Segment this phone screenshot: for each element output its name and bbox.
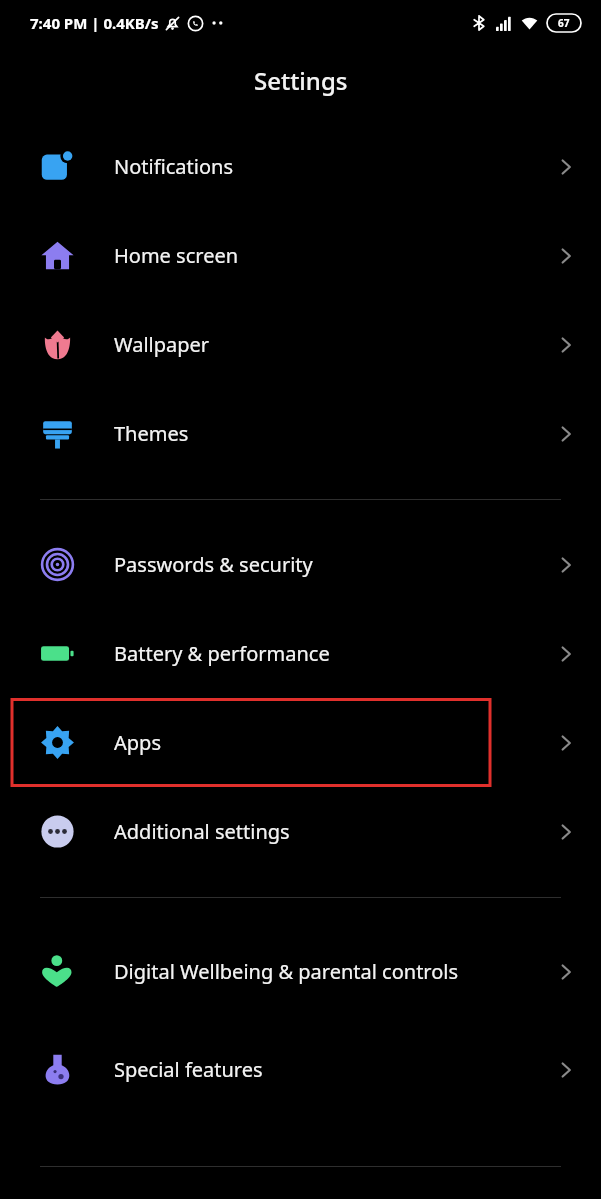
button[interactable]: Apps xyxy=(0,698,601,787)
staticText: 67 xyxy=(558,16,570,30)
staticText: Battery & performance xyxy=(114,640,473,667)
button[interactable]: Themes xyxy=(0,389,601,478)
staticText: Apps xyxy=(114,729,473,756)
button[interactable]: Home screen xyxy=(0,211,601,300)
button[interactable]: Digital Wellbeing & parental controls xyxy=(0,918,601,1025)
button[interactable]: Notifications xyxy=(0,122,601,211)
staticText: Special features xyxy=(114,1056,473,1083)
button[interactable]: Battery & performance xyxy=(0,609,601,698)
staticText: Digital Wellbeing & parental controls xyxy=(114,958,473,985)
staticText: Notifications xyxy=(114,153,473,180)
button[interactable]: Wallpaper xyxy=(0,300,601,389)
staticText: Home screen xyxy=(114,242,473,269)
staticText: Additional settings xyxy=(114,818,473,845)
staticText: Themes xyxy=(114,420,473,447)
button[interactable]: Special features xyxy=(0,1025,601,1114)
staticText: 7:40 PM | 0.4KB/s xyxy=(30,13,159,33)
staticText: Settings xyxy=(254,64,348,97)
button[interactable]: Additional settings xyxy=(0,787,601,876)
staticText: Wallpaper xyxy=(114,331,473,358)
button[interactable]: Passwords & security xyxy=(0,520,601,609)
staticText: Passwords & security xyxy=(114,551,473,578)
